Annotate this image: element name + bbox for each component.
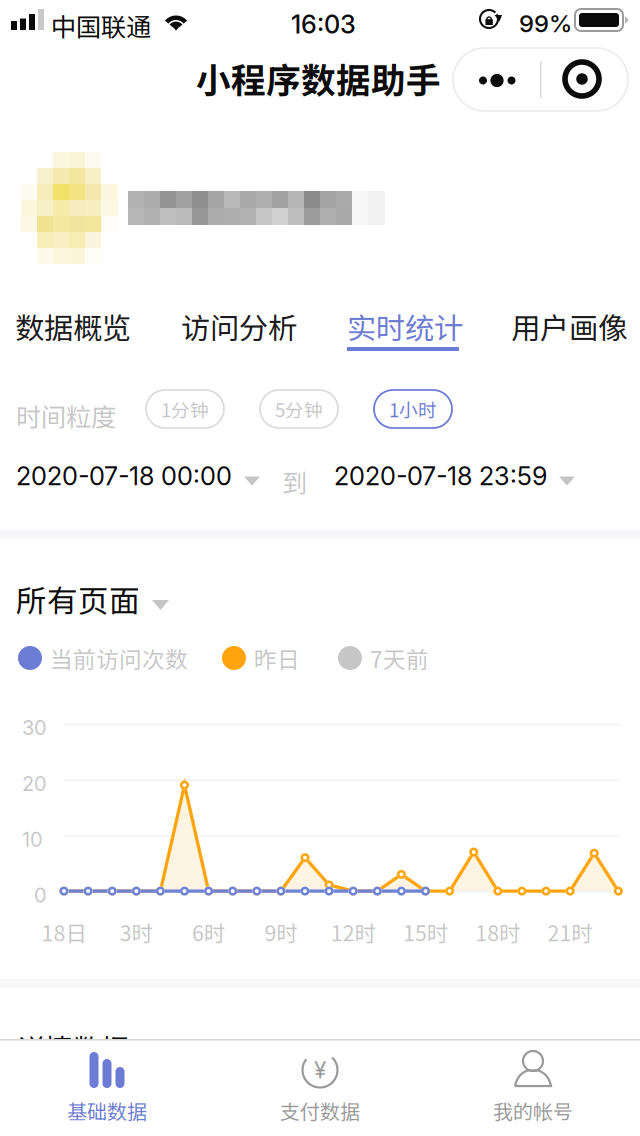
button[interactable]: Account (0, 145, 640, 275)
staticText: 10 (22, 827, 43, 851)
button[interactable]: 基础数据 (0, 1039, 213, 1136)
button[interactable]: 2020-07-18 00:00 (16, 460, 260, 492)
button[interactable]: 1小时 (374, 390, 452, 428)
staticText: 所有页面 (16, 577, 140, 621)
button[interactable]: More and close (453, 48, 628, 111)
staticText: 5分钟 (275, 395, 323, 422)
staticText: 15时 (403, 917, 448, 947)
staticText: 1小时 (389, 395, 437, 422)
button[interactable]: 所有页面 (16, 582, 169, 616)
staticText: 7天前 (370, 642, 429, 674)
staticText: 中国联通 (51, 7, 151, 44)
staticText: 6时 (192, 917, 225, 947)
button[interactable]: 我的帐号 (426, 1039, 639, 1136)
staticText: ¥ (314, 1056, 326, 1084)
staticText: 访问分析 (181, 305, 297, 347)
button[interactable]: 5分钟 (260, 390, 338, 428)
staticText: 18时 (475, 917, 520, 947)
button[interactable]: 2020-07-18 23:59 (334, 460, 575, 492)
staticText: 99% (519, 9, 572, 38)
button[interactable]: 访问分析 (181, 305, 306, 353)
staticText: 小程序数据助手 (196, 53, 441, 103)
button[interactable]: 数据概览 (15, 305, 140, 353)
staticText: 用户画像 (511, 305, 627, 347)
staticText: 当前访问次数 (50, 642, 188, 674)
staticText: 详情数据 (17, 1027, 129, 1067)
staticText: 我的帐号 (493, 1096, 573, 1125)
staticText: 2020-07-18 00:00 (16, 461, 232, 491)
staticText: 16:03 (291, 9, 356, 40)
staticText: 3时 (120, 917, 153, 947)
staticText: 9时 (264, 917, 297, 947)
staticText: 实时统计 (347, 305, 463, 347)
staticText: 1分钟 (161, 395, 209, 422)
staticText: 18日 (41, 917, 86, 947)
staticText: 时间粒度 (16, 397, 116, 434)
staticText: 30 (22, 716, 47, 740)
staticText: 12时 (331, 917, 376, 947)
staticText: 到 (282, 463, 307, 500)
staticText: 20 (22, 771, 47, 796)
staticText: 数据概览 (15, 305, 131, 347)
staticText: 昨日 (254, 642, 300, 674)
staticText: 2020-07-18 23:59 (334, 461, 547, 491)
staticText: 支付数据 (280, 1096, 360, 1125)
button[interactable]: 1分钟 (146, 390, 224, 428)
button[interactable]: 实时统计 (347, 305, 472, 353)
staticText: 0 (34, 883, 47, 907)
staticText: 基础数据 (67, 1096, 147, 1125)
button[interactable]: ¥ (213, 1039, 426, 1136)
button[interactable]: 用户画像 (511, 305, 636, 353)
staticText: 21时 (548, 917, 593, 947)
